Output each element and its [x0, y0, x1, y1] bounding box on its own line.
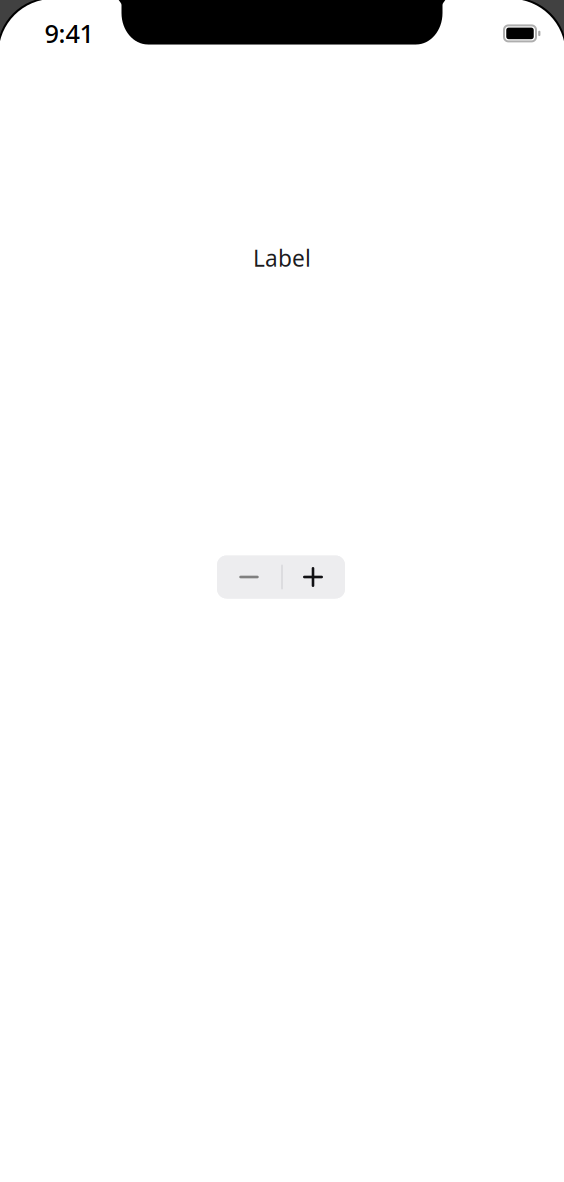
staticText: 9:41 [44, 16, 93, 50]
button[interactable]: Increment [281, 555, 345, 598]
button[interactable]: Decrement [217, 555, 281, 598]
staticText: Label [253, 243, 311, 273]
